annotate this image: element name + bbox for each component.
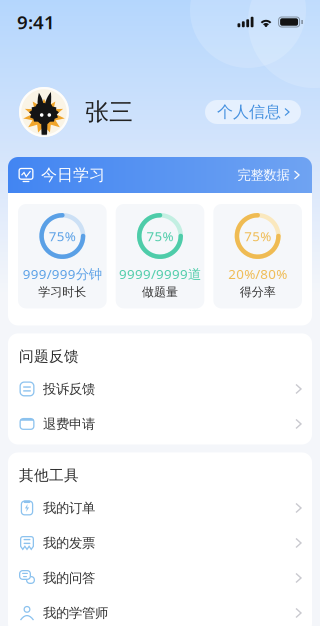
button[interactable]: 我的问答 bbox=[8, 560, 312, 595]
staticText: 20%/80% bbox=[228, 265, 287, 283]
button[interactable]: 个人信息 bbox=[205, 100, 301, 124]
button[interactable]: 完整数据 bbox=[237, 167, 299, 183]
staticText: 得分率 bbox=[240, 285, 276, 299]
staticText: 我的订单 bbox=[43, 500, 95, 516]
staticText: 75% bbox=[244, 227, 271, 245]
button[interactable]: 我的订单 bbox=[8, 490, 312, 525]
staticText: 75% bbox=[146, 227, 173, 245]
staticText: 9999/9999道 bbox=[119, 265, 201, 283]
staticText: 999/999分钟 bbox=[23, 265, 102, 283]
staticText: 我的发票 bbox=[43, 535, 95, 551]
staticText: 9:41 bbox=[17, 10, 55, 34]
button[interactable]: 退费申请 bbox=[8, 406, 312, 441]
staticText: 投诉反馈 bbox=[43, 381, 95, 397]
staticText: 退费申请 bbox=[43, 416, 95, 432]
button[interactable]: 我的学管师 bbox=[8, 595, 312, 626]
staticText: 我的问答 bbox=[43, 570, 95, 586]
button[interactable]: 我的发票 bbox=[8, 525, 312, 560]
button[interactable]: 投诉反馈 bbox=[8, 371, 312, 406]
staticText: 其他工具 bbox=[19, 466, 79, 484]
staticText: 做题量 bbox=[142, 285, 178, 299]
staticText: 个人信息 bbox=[217, 102, 281, 122]
staticText: 我的学管师 bbox=[43, 605, 108, 621]
staticText: 完整数据 bbox=[237, 167, 289, 183]
staticText: 学习时长 bbox=[38, 285, 86, 299]
staticText: 今日学习 bbox=[41, 165, 105, 185]
staticText: 张三 bbox=[85, 97, 133, 127]
staticText: 75% bbox=[49, 227, 76, 245]
staticText: 问题反馈 bbox=[19, 347, 79, 365]
